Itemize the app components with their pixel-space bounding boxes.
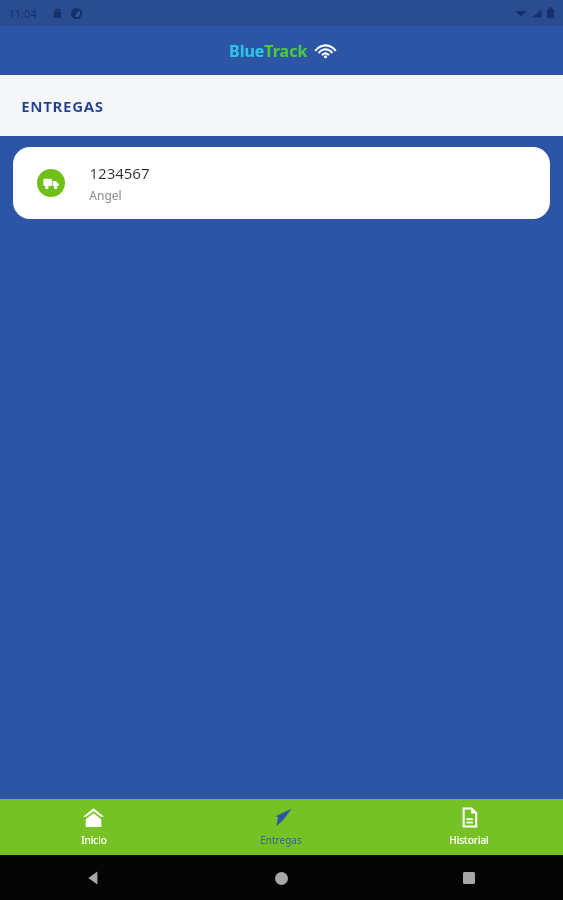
staticText: Historial — [449, 833, 489, 847]
button[interactable]: Historial — [375, 800, 563, 854]
button[interactable]: 1234567 — [13, 147, 550, 219]
staticText: 11:04 — [8, 6, 37, 21]
staticText: 1234567 — [89, 163, 150, 183]
button[interactable]: Home — [266, 863, 296, 893]
button[interactable]: Entregas — [187, 800, 375, 854]
button[interactable]: Recents — [454, 863, 484, 893]
staticText: ENTREGAS — [21, 96, 104, 116]
staticText: BlueTrack — [229, 40, 308, 62]
staticText: Inicio — [81, 833, 107, 847]
button[interactable]: Inicio — [0, 800, 187, 854]
button[interactable]: Back — [79, 863, 109, 893]
staticText: Entregas — [260, 833, 302, 847]
staticText: Angel — [89, 187, 122, 203]
